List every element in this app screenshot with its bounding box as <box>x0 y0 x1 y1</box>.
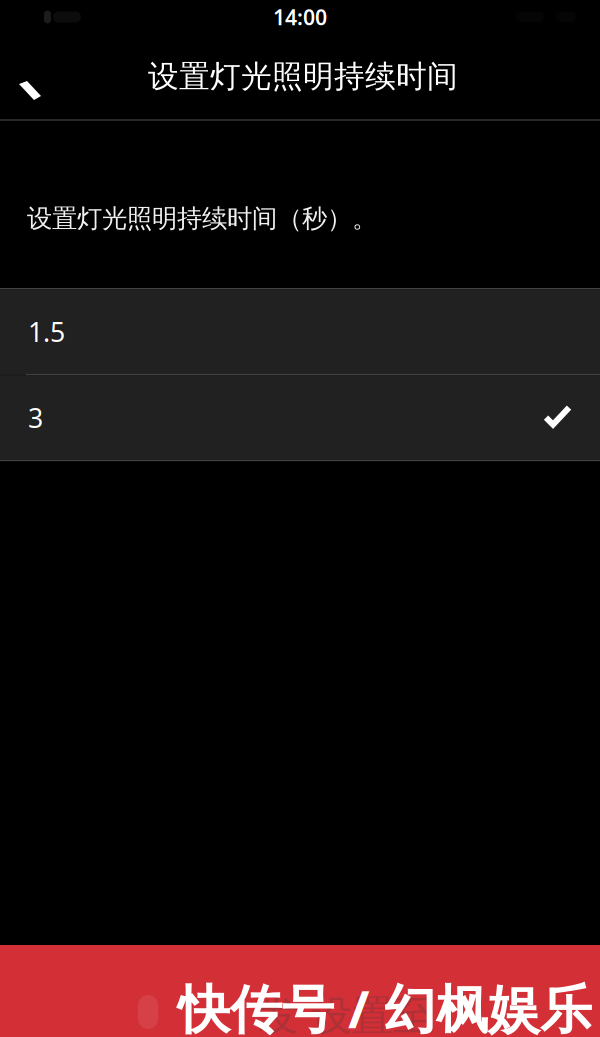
staticText: 发 设置至 <box>258 991 434 1037</box>
button[interactable]: 1.5 <box>0 289 600 374</box>
staticText: 1.5 <box>28 314 65 349</box>
button[interactable]: 3 <box>0 375 600 460</box>
staticText: 14:00 <box>273 3 327 31</box>
staticText: 3 <box>28 400 43 435</box>
button[interactable]: Back <box>0 34 76 119</box>
staticText: 设置灯光照明持续时间（秒）。 <box>27 203 377 234</box>
staticText: 快传号 / 幻枫娱乐 <box>178 973 592 1037</box>
staticText: 设置灯光照明持续时间 <box>148 58 458 95</box>
